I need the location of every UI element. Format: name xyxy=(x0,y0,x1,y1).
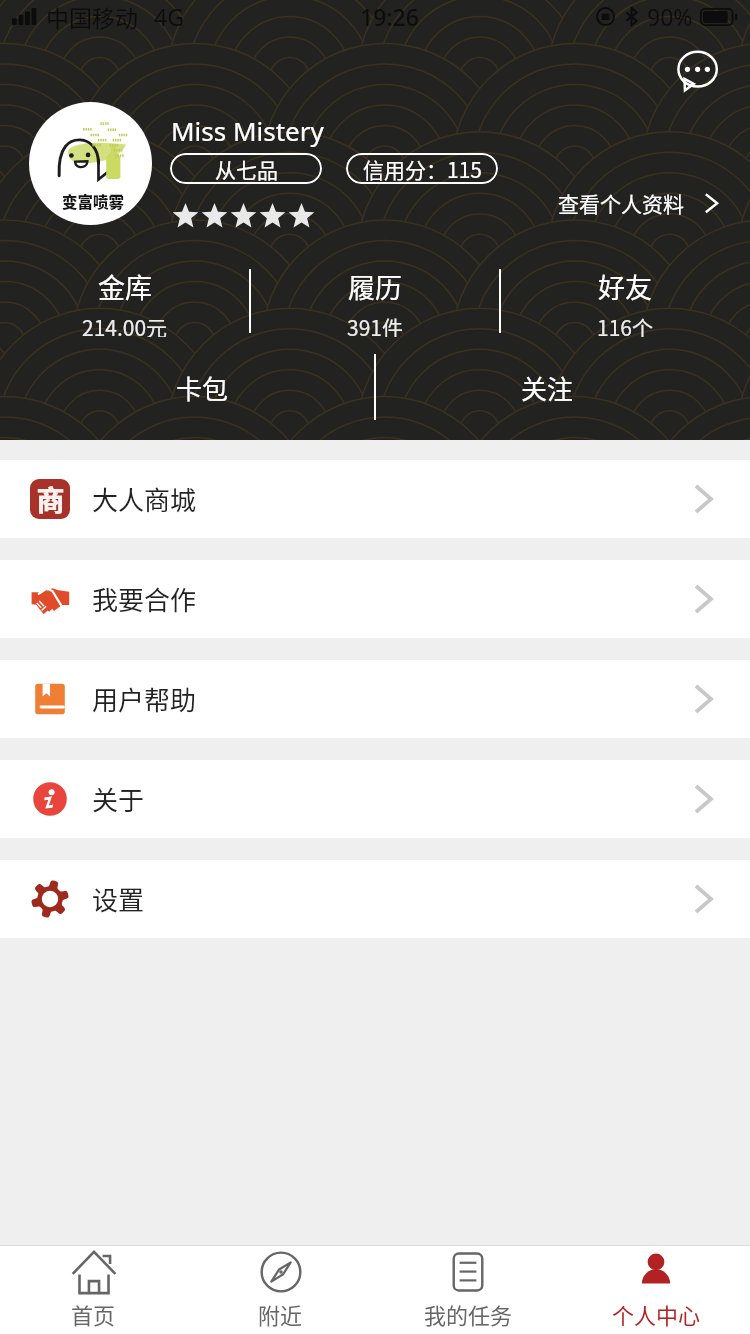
button[interactable]: 关于 xyxy=(0,760,750,838)
staticText: 我的任务 xyxy=(424,1298,513,1330)
staticText: 商 xyxy=(36,479,65,519)
staticText: 中国移动 xyxy=(46,0,138,33)
staticText: 我要合作 xyxy=(92,580,197,618)
staticText: 4G xyxy=(154,1,184,32)
staticText: 好友 xyxy=(598,267,652,306)
staticText: 关于 xyxy=(92,780,145,818)
button[interactable]: 关注 xyxy=(375,369,720,409)
staticText: 设置 xyxy=(92,880,145,918)
button[interactable]: 商 xyxy=(0,460,750,538)
staticText: 从七品 xyxy=(215,154,278,184)
staticText: Miss Mistery xyxy=(171,113,324,148)
staticText: 变富喷雾 xyxy=(62,190,124,212)
staticText: 大人商城 xyxy=(92,480,197,518)
staticText: 19:26 xyxy=(360,1,419,32)
button[interactable]: 卡包 xyxy=(30,369,375,409)
staticText: 116个 xyxy=(597,312,653,337)
button[interactable]: 查看个人资料 xyxy=(548,188,719,218)
button[interactable]: 履历 xyxy=(250,267,500,337)
staticText: 金库 xyxy=(98,267,152,306)
staticText: 查看个人资料 xyxy=(558,188,684,218)
button[interactable]: 金库 xyxy=(0,267,250,337)
staticText: 履历 xyxy=(348,267,402,306)
staticText: 214.00元 xyxy=(82,312,168,337)
staticText: 391件 xyxy=(347,312,403,337)
button[interactable]: 用户帮助 xyxy=(0,660,750,738)
staticText: 首页 xyxy=(71,1298,116,1330)
button[interactable]: 好友 xyxy=(500,267,750,337)
button[interactable]: Messages xyxy=(668,44,726,100)
button[interactable]: 个人中心 xyxy=(562,1246,750,1334)
button[interactable]: 信用分：115 xyxy=(346,153,498,184)
button[interactable]: 附近 xyxy=(187,1246,374,1334)
staticText: 附近 xyxy=(258,1298,303,1330)
button[interactable]: 首页 xyxy=(0,1246,187,1334)
staticText: 个人中心 xyxy=(612,1298,701,1330)
button[interactable]: 我要合作 xyxy=(0,560,750,638)
staticText: 卡包 xyxy=(176,369,229,407)
staticText: 用户帮助 xyxy=(92,680,197,718)
staticText: 90% xyxy=(647,1,693,32)
button[interactable]: 设置 xyxy=(0,860,750,938)
staticText: 信用分：115 xyxy=(363,154,482,184)
staticText: 关注 xyxy=(521,369,574,407)
button[interactable]: 从七品 xyxy=(170,153,322,184)
button[interactable]: 我的任务 xyxy=(374,1246,562,1334)
